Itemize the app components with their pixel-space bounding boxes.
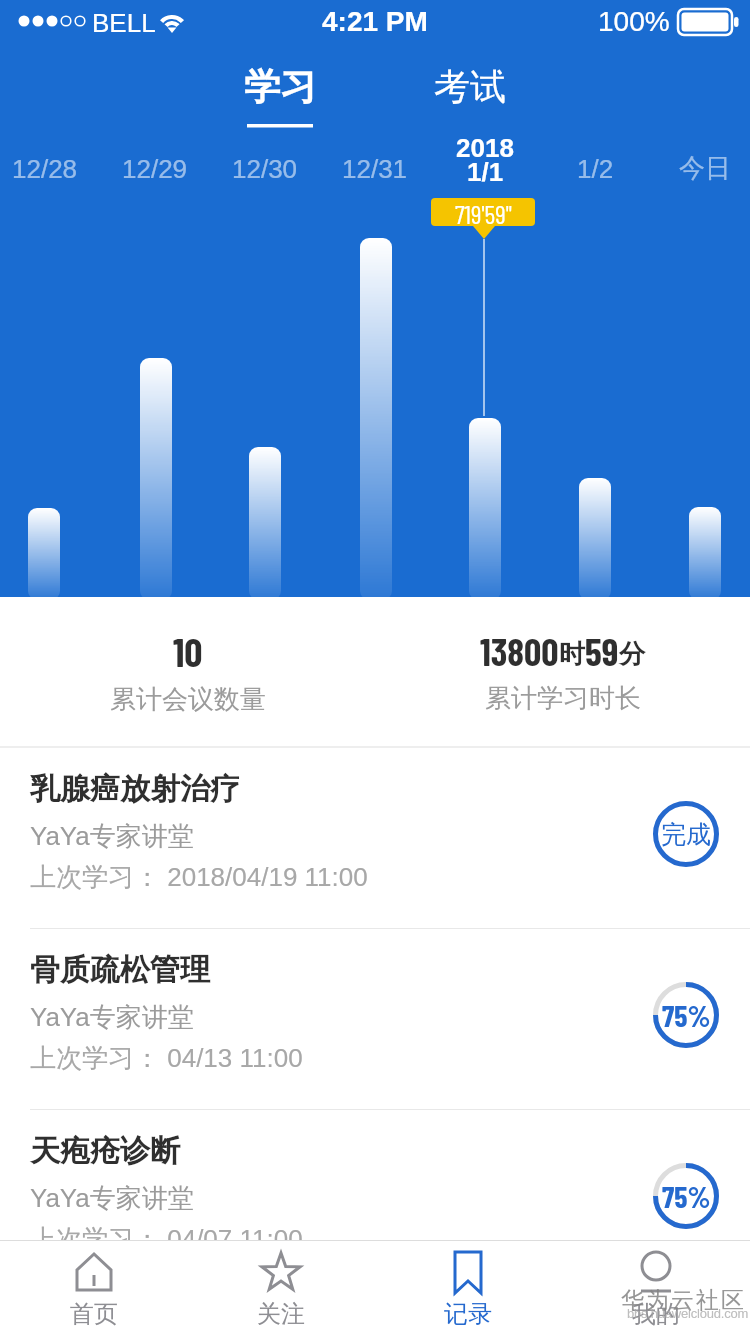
staticText: 59 (585, 628, 619, 674)
staticText: 乳腺癌放射治疗 (30, 770, 240, 808)
button[interactable]: 12/30 (210, 150, 320, 186)
button[interactable]: 我的 (562, 1241, 750, 1334)
staticText: 累计学习时长 (485, 682, 641, 715)
staticText: 关注 (257, 1299, 305, 1329)
button[interactable]: 记录 (374, 1241, 562, 1334)
staticText: 10 (173, 627, 203, 675)
button[interactable]: 首页 (0, 1241, 187, 1334)
staticText: 记录 (444, 1299, 492, 1329)
staticText: 100% (598, 6, 670, 37)
button[interactable]: 12/31 (320, 150, 430, 186)
staticText: BELL (92, 8, 166, 37)
staticText: 学习 (244, 64, 316, 109)
button[interactable]: 1/2 (540, 150, 650, 186)
button[interactable]: 12/29 (100, 150, 210, 186)
staticText: YaYa专家讲堂 (30, 820, 194, 853)
staticText: 华为云社区 (620, 1286, 745, 1315)
staticText: 完成 (661, 819, 711, 850)
button[interactable]: 乳腺癌放射治疗 (0, 748, 750, 928)
button[interactable]: 关注 (187, 1241, 374, 1334)
button[interactable]: 今日 (650, 150, 750, 186)
staticText: 上次学习： 2018/04/19 11:00 (30, 861, 368, 894)
staticText: 13800 (480, 628, 559, 674)
staticText: 累计会议数量 (110, 683, 266, 716)
button[interactable]: 学习 (180, 62, 380, 110)
staticText: YaYa专家讲堂 (30, 1001, 194, 1034)
button[interactable]: 2018 (430, 129, 540, 165)
staticText: 1/1 (467, 157, 504, 186)
staticText: 12/31 (342, 154, 408, 183)
staticText: 今日 (679, 152, 731, 185)
staticText: 75% (662, 1178, 711, 1214)
staticText: 分 (619, 638, 645, 671)
staticText: 上次学习： 04/13 11:00 (30, 1042, 303, 1075)
button[interactable]: 考试 (370, 62, 570, 110)
staticText: 12/29 (122, 154, 188, 183)
staticText: 首页 (70, 1299, 118, 1329)
staticText: YaYa专家讲堂 (30, 1182, 194, 1215)
staticText: 骨质疏松管理 (30, 951, 210, 989)
button[interactable]: 骨质疏松管理 (0, 929, 750, 1109)
staticText: 天疱疮诊断 (30, 1132, 180, 1170)
button[interactable]: 天疱疮诊断 (0, 1110, 750, 1290)
staticText: 1/2 (577, 154, 614, 183)
staticText: 4:21 PM (322, 6, 428, 37)
staticText: 75% (662, 997, 711, 1033)
staticText: 时 (559, 638, 585, 671)
staticText: 考试 (434, 64, 506, 109)
staticText: 12/30 (232, 154, 298, 183)
staticText: 12/28 (12, 154, 78, 183)
staticText: 2018 (456, 133, 514, 162)
staticText: 上次学习： 04/07 11:00 (30, 1223, 303, 1256)
button[interactable]: 12/28 (0, 150, 100, 186)
staticText: 719'59" (455, 198, 512, 226)
staticText: bbs.huaweicloud.com (627, 1306, 749, 1321)
staticText: 我的 (632, 1299, 680, 1329)
